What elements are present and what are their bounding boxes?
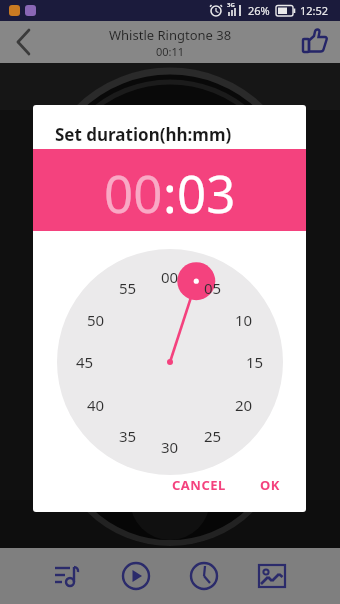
button[interactable] [250,554,294,598]
staticText: 26% [248,3,270,18]
staticText: CANCEL [172,476,226,494]
staticText: : [163,158,177,227]
staticText: 55 [119,278,137,298]
staticText: Whistle Ringtone 38 [109,26,232,44]
staticText: 20 [235,395,253,415]
staticText: 15 [246,352,264,372]
staticText: 30 [161,437,179,457]
staticText: Set duration(hh:mm) [55,123,232,146]
staticText: 00:11 [156,44,185,59]
staticText: 03 [177,158,236,227]
staticText: 25 [204,426,222,446]
staticText: 3G [227,1,235,9]
staticText: 45 [76,352,94,372]
button[interactable] [182,554,226,598]
button[interactable]: CANCEL [164,471,234,499]
staticText: 10 [235,310,253,330]
button[interactable]: OK [252,471,288,499]
staticText: OK [260,476,280,494]
button[interactable] [299,25,333,59]
staticText: 05 [204,278,222,298]
staticText: 50 [87,310,105,330]
button[interactable] [4,21,44,63]
staticText: 35 [119,426,137,446]
staticText: 00 [104,158,163,227]
staticText: 00 [161,267,179,287]
button[interactable] [46,554,90,598]
button[interactable] [114,554,158,598]
staticText: 12:52 [300,3,329,18]
staticText: 40 [87,395,105,415]
